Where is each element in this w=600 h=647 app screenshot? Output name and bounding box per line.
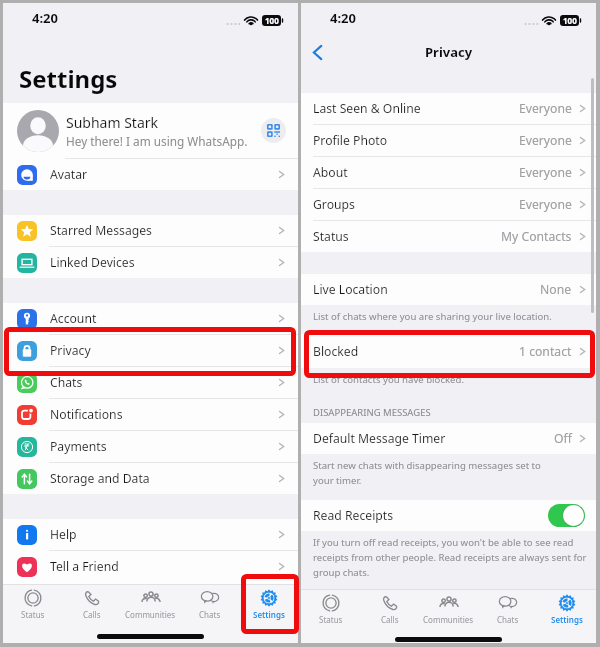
staticText: Read Receipts [313,507,394,524]
button[interactable]: Status [3,585,62,622]
button[interactable]: Storage and Data [3,463,298,494]
staticText: Profile Photo [313,132,388,149]
staticText: Start new chats with disappearing messag… [313,459,541,487]
button[interactable]: Settings [537,590,596,627]
button[interactable]: Groups [301,189,596,220]
staticText: Chats [199,609,221,620]
staticText: List of chats where you are sharing your… [313,310,552,323]
button[interactable]: Help [3,519,298,550]
staticText: Help [50,526,77,543]
staticText: Settings [19,62,118,95]
button[interactable]: About [301,157,596,188]
staticText: 100 [265,15,279,26]
staticText: 100 [563,15,577,26]
button[interactable]: Read Receipts [301,500,596,531]
button[interactable]: Chats [478,590,537,627]
button[interactable]: Avatar [3,159,298,190]
staticText: Subham Stark [66,113,159,132]
button[interactable]: Settings [239,585,298,622]
staticText: Status [319,614,343,625]
staticText: Starred Messages [50,222,152,239]
staticText: Status [21,609,45,620]
button[interactable]: Status [301,221,596,252]
button[interactable]: Status [301,590,360,627]
staticText: Everyone [519,196,572,213]
button[interactable]: Blocked [301,334,596,368]
button[interactable]: Calls [360,590,419,627]
staticText: Everyone [519,164,572,181]
staticText: Groups [313,196,355,213]
staticText: Everyone [519,100,572,117]
staticText: Status [313,228,349,245]
staticText: Privacy [425,43,473,61]
staticText: Linked Devices [50,254,135,271]
staticText: Hey there! I am using WhatsApp. [66,133,248,149]
staticText: Calls [83,609,101,620]
button[interactable]: Communities [419,590,478,627]
staticText: Everyone [519,132,572,149]
button[interactable]: Default Message Timer [301,423,596,454]
staticText: Blocked [313,343,359,360]
staticText: Default Message Timer [313,430,446,447]
staticText: 4:20 [32,9,58,27]
staticText: 4:20 [330,9,356,27]
staticText: Off [554,430,572,447]
staticText: About [313,164,348,181]
staticText: Chats [497,614,519,625]
button[interactable]: Last Seen & Online [301,93,596,124]
staticText: List of contacts you have blocked. [313,373,464,386]
staticText: Tell a Friend [50,558,119,575]
staticText: Communities [423,614,474,625]
staticText: Storage and Data [50,470,150,487]
staticText: Settings [253,609,285,620]
button[interactable]: Show QR code [261,118,286,143]
button[interactable]: Account [3,303,298,334]
staticText: Chats [50,374,83,391]
staticText: If you turn off read receipts, you won't… [313,536,587,579]
staticText: Avatar [50,166,88,183]
staticText: Live Location [313,281,388,298]
button[interactable]: Starred Messages [3,215,298,246]
staticText: Communities [125,609,176,620]
button[interactable]: Subham Stark [3,103,298,158]
button[interactable]: Back [302,37,332,67]
button[interactable]: Privacy [3,335,298,366]
button[interactable]: Tell a Friend [3,551,298,582]
staticText: Last Seen & Online [313,100,421,117]
staticText: My Contacts [501,228,572,245]
button[interactable]: Communities [121,585,180,622]
button[interactable]: Notifications [3,399,298,430]
staticText: Payments [50,438,107,455]
staticText: Calls [381,614,399,625]
button[interactable]: Payments [3,431,298,462]
staticText: None [540,281,572,298]
staticText: Account [50,310,97,327]
button[interactable]: Live Location [301,274,596,305]
staticText: 1 contact [519,343,572,360]
staticText: DISAPPEARING MESSAGES [313,406,431,419]
button[interactable]: Profile Photo [301,125,596,156]
staticText: Settings [551,614,583,625]
staticText: Notifications [50,406,123,423]
button[interactable]: Chats [3,367,298,398]
staticText: Privacy [50,342,91,359]
button[interactable]: Linked Devices [3,247,298,278]
button[interactable]: Calls [62,585,121,622]
button[interactable]: Chats [180,585,239,622]
